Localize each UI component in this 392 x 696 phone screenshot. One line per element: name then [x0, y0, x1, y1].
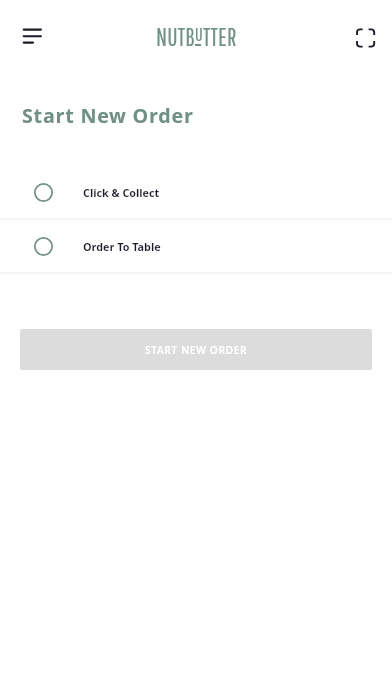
staticText: U — [195, 24, 203, 45]
button[interactable]: Order To Table — [0, 220, 392, 272]
button[interactable]: Click & Collect — [0, 166, 392, 218]
button[interactable]: NUTB — [156, 23, 237, 51]
staticText: NUTB — [156, 23, 195, 51]
staticText: Start New Order — [22, 102, 194, 129]
button[interactable]: START NEW ORDER — [20, 329, 372, 370]
staticText: Order To Table — [83, 239, 161, 254]
staticText: Click & Collect — [83, 185, 160, 200]
button[interactable]: Open navigation menu — [10, 23, 48, 49]
staticText: TTER — [203, 23, 237, 51]
staticText: START NEW ORDER — [145, 343, 248, 357]
button[interactable]: Scan QR code — [350, 24, 384, 51]
